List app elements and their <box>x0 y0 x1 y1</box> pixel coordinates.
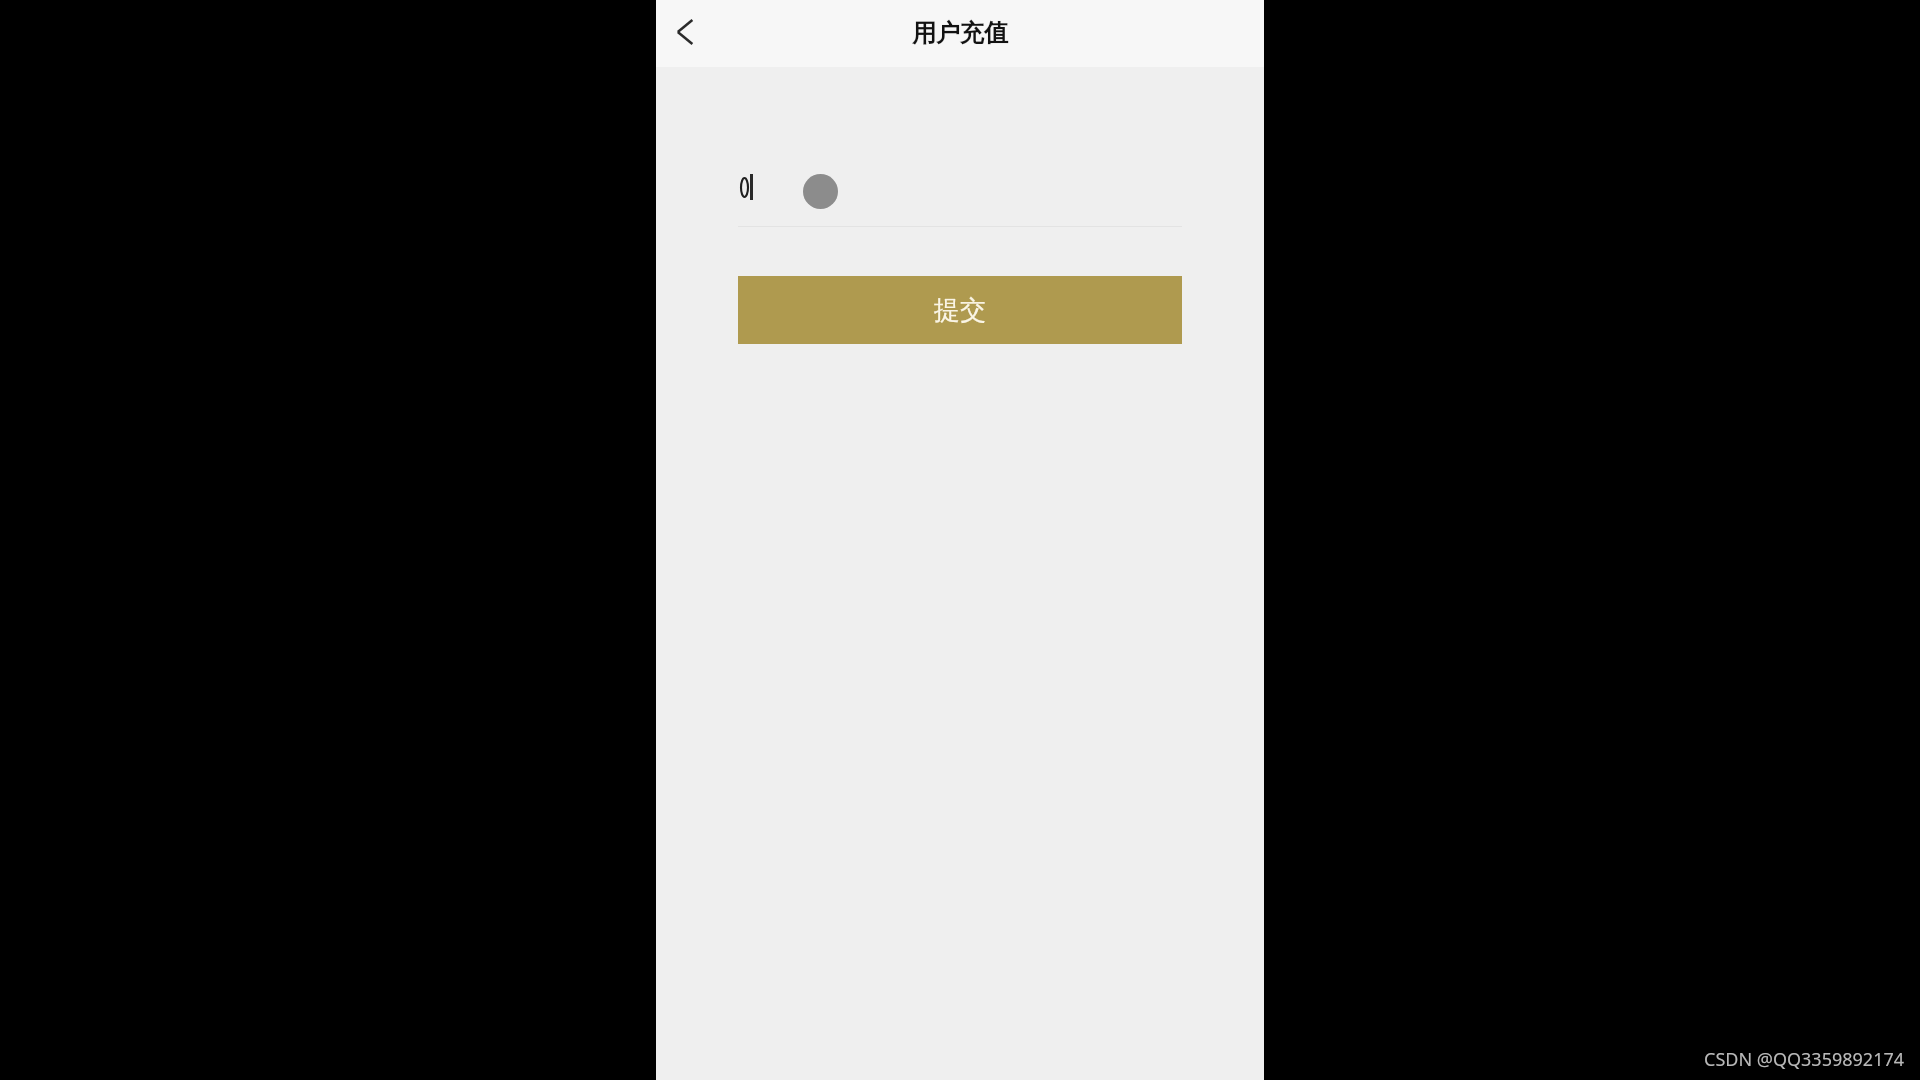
button[interactable]: Back <box>659 8 707 56</box>
button[interactable]: 提交 <box>738 276 1182 344</box>
button[interactable]: Recharge amount <box>738 168 1182 227</box>
staticText: CSDN @QQ3359892174 <box>1704 1047 1905 1072</box>
staticText: 用户充值 <box>912 18 1008 48</box>
staticText: 提交 <box>934 294 986 327</box>
